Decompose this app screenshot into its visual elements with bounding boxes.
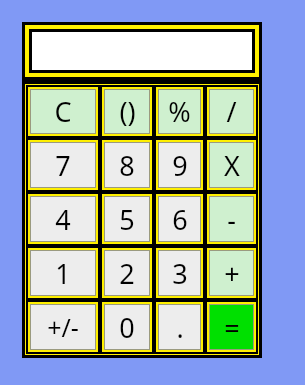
staticText: %: [168, 93, 191, 130]
button[interactable]: X: [210, 143, 253, 187]
button[interactable]: +: [210, 251, 253, 295]
staticText: C: [54, 93, 72, 130]
staticText: 9: [172, 147, 188, 184]
staticText: 6: [172, 201, 188, 238]
button[interactable]: %: [159, 90, 200, 133]
staticText: (): [119, 93, 136, 130]
button[interactable]: (): [105, 90, 149, 133]
button[interactable]: 4: [31, 197, 95, 241]
button[interactable]: C: [31, 90, 95, 133]
staticText: 3: [172, 255, 188, 292]
button[interactable]: 6: [159, 197, 200, 241]
button[interactable]: 0: [105, 305, 149, 349]
staticText: 0: [119, 309, 135, 346]
staticText: 7: [55, 147, 71, 184]
button[interactable]: /: [210, 90, 253, 133]
button[interactable]: 3: [159, 251, 200, 295]
button[interactable]: 9: [159, 143, 200, 187]
staticText: +: [224, 255, 240, 292]
staticText: X: [224, 147, 240, 184]
button[interactable]: -: [210, 197, 253, 241]
button[interactable]: +/-: [31, 305, 95, 349]
staticText: 8: [119, 147, 135, 184]
staticText: =: [224, 309, 240, 346]
staticText: -: [227, 201, 236, 238]
staticText: 2: [119, 255, 135, 292]
staticText: 5: [119, 201, 135, 238]
button[interactable]: 7: [31, 143, 95, 187]
button[interactable]: =: [210, 305, 253, 349]
button[interactable]: .: [159, 305, 200, 349]
staticText: 1: [55, 255, 71, 292]
staticText: .: [176, 309, 184, 346]
button[interactable]: 8: [105, 143, 149, 187]
button[interactable]: 5: [105, 197, 149, 241]
button[interactable]: 2: [105, 251, 149, 295]
staticText: /: [226, 93, 237, 130]
staticText: +/-: [47, 310, 79, 344]
button[interactable]: 1: [31, 251, 95, 295]
staticText: 4: [55, 201, 71, 238]
